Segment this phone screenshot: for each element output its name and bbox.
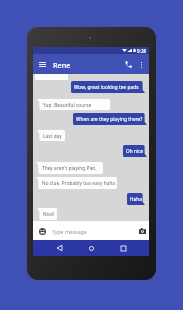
button[interactable]: Haha xyxy=(127,193,145,205)
button[interactable]: Call xyxy=(122,58,135,71)
button[interactable]: Take photo xyxy=(137,226,147,236)
button[interactable]: Wow, great looking tee pads xyxy=(71,81,145,93)
button[interactable]: Last day xyxy=(37,130,65,141)
button[interactable]: When are they playing there? xyxy=(73,113,147,125)
button[interactable]: Insert emoji xyxy=(37,226,47,236)
staticText: When are they playing there? xyxy=(76,116,143,122)
button[interactable]: Yup. Beautiful course xyxy=(37,99,110,110)
button[interactable]: More options xyxy=(135,58,148,71)
staticText: Nice! xyxy=(43,211,55,217)
staticText: Oh nice xyxy=(126,148,144,154)
button[interactable]: Oh nice xyxy=(123,145,147,157)
button[interactable]: Back xyxy=(52,241,66,255)
staticText: 9:28 xyxy=(137,48,147,54)
staticText: Wow, great looking tee pads xyxy=(74,84,139,90)
staticText: No clue. Probably too easy haha xyxy=(42,180,116,186)
button[interactable]: No clue. Probably too easy haha xyxy=(36,177,117,189)
button[interactable]: Recent apps xyxy=(116,241,130,255)
button[interactable]: They aren't playing Piet. xyxy=(36,162,103,174)
staticText: Haha xyxy=(130,196,142,202)
staticText: Yup. Beautiful course xyxy=(43,102,92,108)
button[interactable]: Open navigation menu xyxy=(36,58,49,71)
staticText: Rene xyxy=(53,60,71,70)
staticText: Last day xyxy=(43,133,62,139)
button[interactable]: Home xyxy=(84,241,98,255)
staticText: They aren't playing Piet. xyxy=(42,165,97,171)
button[interactable]: Nice! xyxy=(37,208,57,220)
staticText: Type message xyxy=(52,228,87,235)
